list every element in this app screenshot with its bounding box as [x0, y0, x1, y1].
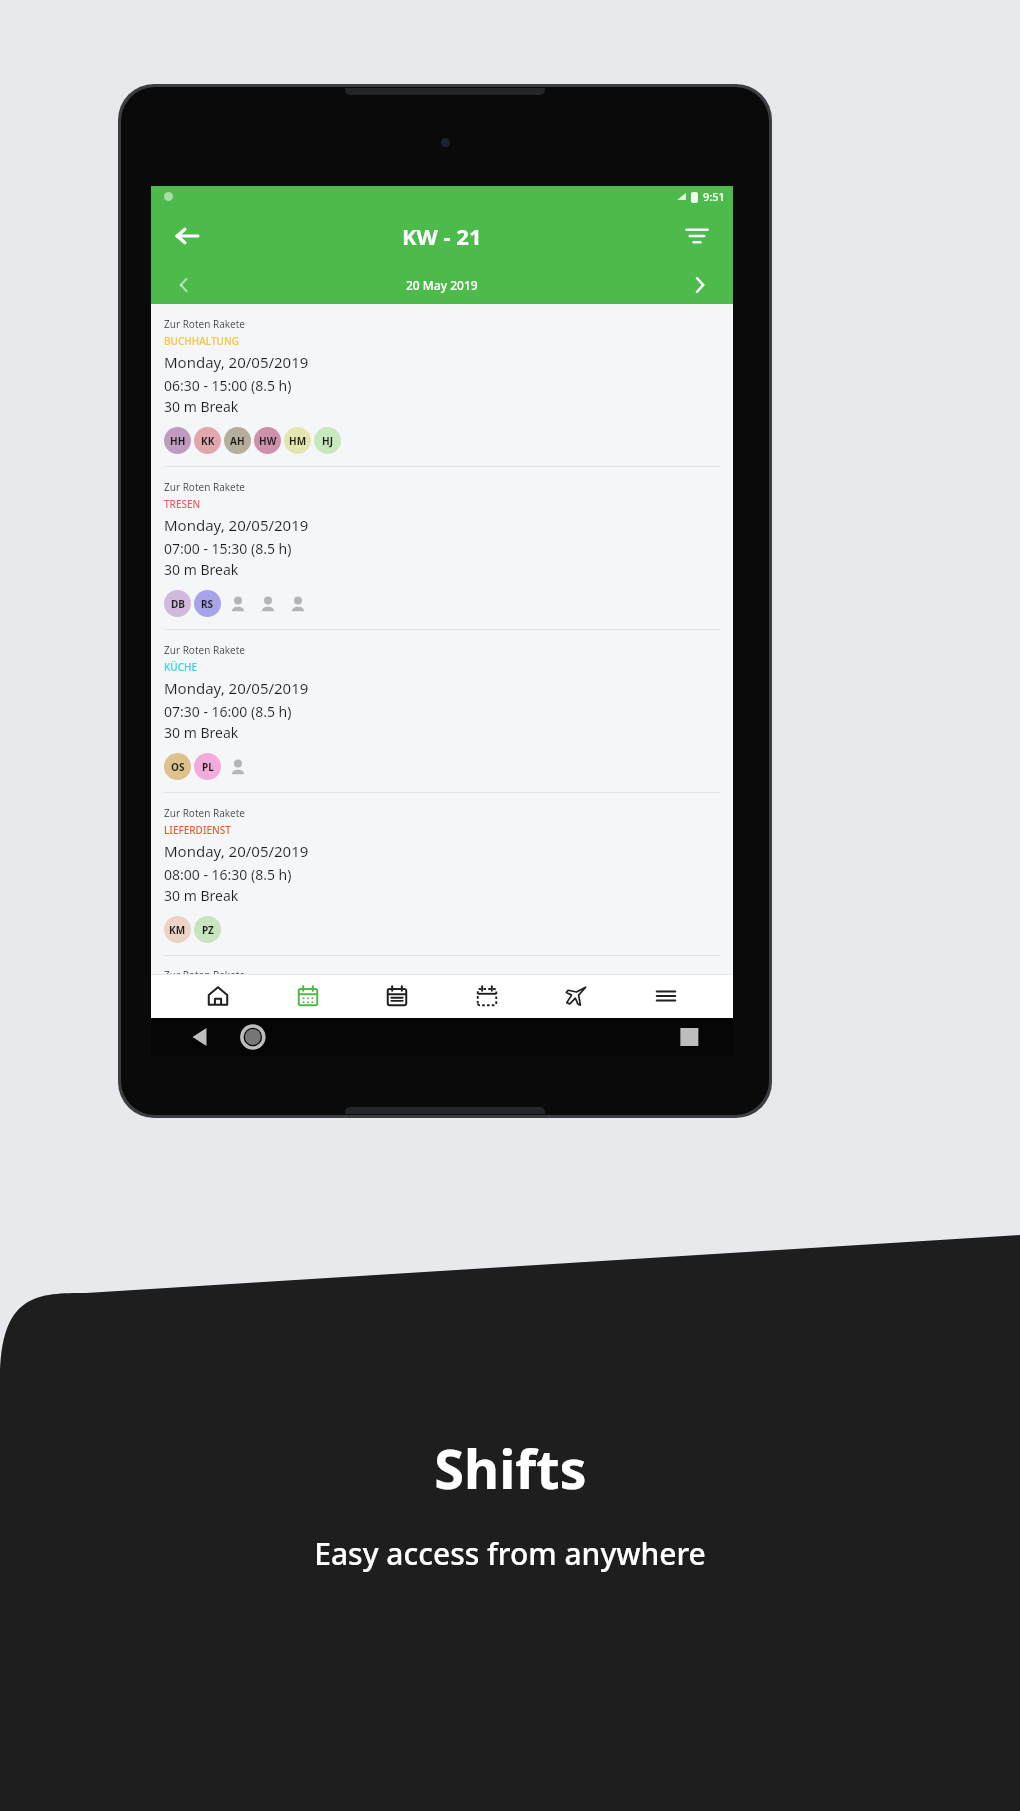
button[interactable]: Week schedule [286, 974, 330, 1018]
button[interactable]: Filter [675, 214, 719, 258]
staticText: KW - 21 [402, 221, 482, 251]
staticText: KK [201, 434, 215, 448]
button[interactable]: Menu [644, 974, 688, 1018]
staticText: HW [259, 434, 277, 448]
staticText: 07:00 - 15:30 (8.5 h) [164, 539, 292, 558]
staticText: 06:30 - 15:00 (8.5 h) [164, 376, 292, 395]
button[interactable]: Zur Roten Rakete [151, 304, 733, 467]
staticText: Zur Roten Rakete [164, 806, 245, 820]
button[interactable]: Open shifts [465, 974, 509, 1018]
staticText: Monday, 20/05/2019 [164, 515, 309, 535]
button[interactable]: Absences [554, 974, 598, 1018]
button[interactable]: Zur Roten Rakete [151, 956, 733, 974]
button[interactable]: Zur Roten Rakete [151, 467, 733, 630]
staticText: Monday, 20/05/2019 [164, 678, 309, 698]
button[interactable]: Shift list [375, 974, 419, 1018]
staticText: LIEFERDIENST [164, 823, 231, 837]
staticText: 30 m Break [164, 886, 239, 905]
staticText: TRESEN [164, 497, 201, 511]
button[interactable]: Next day [683, 268, 717, 302]
staticText: OS [171, 760, 185, 774]
button[interactable]: Zur Roten Rakete [151, 793, 733, 956]
button[interactable]: Home [196, 974, 240, 1018]
staticText: RS [201, 597, 214, 611]
staticText: Monday, 20/05/2019 [164, 841, 309, 861]
staticText: BUCHHALTUNG [164, 334, 239, 348]
staticText: Shifts [434, 1431, 587, 1505]
button[interactable]: Back [163, 212, 211, 260]
staticText: PL [202, 760, 214, 774]
staticText: HM [289, 434, 307, 448]
staticText: 08:00 - 16:30 (8.5 h) [164, 865, 292, 884]
staticText: Zur Roten Rakete [164, 643, 245, 657]
staticText: Zur Roten Rakete [164, 480, 245, 494]
staticText: Zur Roten Rakete [164, 968, 245, 974]
staticText: 30 m Break [164, 723, 239, 742]
button[interactable]: Previous day [167, 268, 201, 302]
staticText: DB [171, 597, 185, 611]
staticText: 20 May 2019 [406, 277, 478, 293]
staticText: AH [230, 434, 245, 448]
staticText: 30 m Break [164, 397, 239, 416]
staticText: Monday, 20/05/2019 [164, 352, 309, 372]
staticText: KM [169, 923, 186, 937]
staticText: KÜCHE [164, 660, 198, 674]
staticText: HH [170, 434, 186, 448]
staticText: PZ [202, 923, 214, 937]
staticText: HJ [322, 434, 333, 448]
staticText: Zur Roten Rakete [164, 317, 245, 331]
staticText: Easy access from anywhere [314, 1533, 706, 1574]
button[interactable]: Zur Roten Rakete [151, 630, 733, 793]
staticText: 07:30 - 16:00 (8.5 h) [164, 702, 292, 721]
staticText: 9:51 [703, 189, 725, 204]
staticText: 30 m Break [164, 560, 239, 579]
